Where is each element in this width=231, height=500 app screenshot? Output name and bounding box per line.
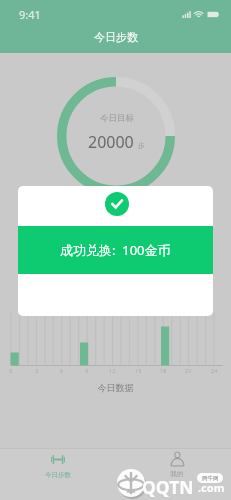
staticText: 今日步数 — [94, 30, 138, 44]
staticText: 9:41 — [19, 7, 41, 22]
staticText: 步 — [138, 141, 145, 150]
staticText: 21 — [185, 367, 192, 374]
other: 我的 — [171, 452, 184, 466]
staticText: .com — [198, 480, 225, 495]
staticText: 24 — [211, 367, 218, 374]
staticText: 今日数据 — [0, 382, 231, 393]
staticText: 3 — [35, 367, 39, 374]
staticText: 12 — [109, 367, 116, 374]
staticText: 我的 — [149, 470, 205, 478]
staticText: 6 — [60, 367, 64, 374]
staticText: 成功兑换: 100金币 — [60, 241, 171, 259]
staticText: 腾牛网 — [202, 475, 219, 482]
staticText: 今日步数 — [30, 471, 86, 479]
button[interactable]: 今日步数 — [30, 455, 86, 479]
staticText: 18 — [160, 367, 167, 374]
staticText: 15 — [135, 367, 142, 374]
staticText: 20000 — [88, 131, 134, 153]
staticText: 0 — [9, 367, 13, 374]
other: 今日步数 — [51, 455, 65, 464]
staticText: 今日目标 — [100, 113, 134, 124]
button[interactable]: 我的 — [149, 452, 205, 478]
staticText: 9 — [85, 367, 89, 374]
staticText: QQTN — [142, 475, 194, 499]
